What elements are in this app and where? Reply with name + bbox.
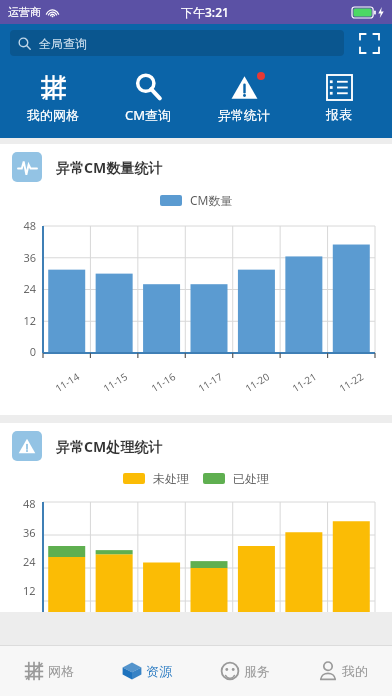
staticText: 未处理: [153, 471, 189, 486]
staticText: CM数量: [190, 192, 233, 208]
staticText: 异常CM数量统计: [56, 158, 163, 177]
staticText: 48: [23, 218, 36, 233]
button[interactable]: 资源: [98, 646, 196, 696]
staticText: 36: [23, 525, 36, 540]
staticText: 36: [23, 250, 36, 265]
staticText: CM查询: [125, 106, 172, 124]
staticText: 24: [23, 554, 36, 569]
button[interactable]: 异常统计: [202, 70, 286, 127]
staticText: 11-16: [148, 369, 179, 395]
button[interactable]: 全局查询: [10, 30, 344, 56]
button[interactable]: 我的网格: [11, 70, 95, 127]
staticText: 资源: [146, 663, 172, 679]
button[interactable]: 报表: [297, 71, 381, 126]
button[interactable]: 扫描: [356, 30, 382, 56]
staticText: 报表: [326, 106, 352, 122]
staticText: 11-15: [100, 369, 131, 395]
staticText: 11-17: [195, 369, 226, 395]
staticText: 48: [23, 496, 36, 511]
staticText: 11-22: [336, 369, 367, 395]
staticText: 服务: [244, 663, 270, 679]
staticText: 我的网格: [27, 107, 79, 123]
staticText: 11-21: [289, 369, 320, 395]
button[interactable]: CM查询: [106, 69, 190, 128]
staticText: 24: [23, 281, 36, 296]
staticText: 异常CM处理统计: [56, 437, 163, 456]
button[interactable]: 服务: [196, 646, 294, 696]
staticText: 全局查询: [39, 36, 87, 51]
staticText: 11-20: [242, 369, 273, 395]
staticText: 12: [23, 313, 36, 328]
button[interactable]: 网格: [0, 646, 98, 696]
staticText: 12: [23, 583, 36, 598]
button[interactable]: 我的: [294, 646, 392, 696]
staticText: 网格: [48, 663, 74, 679]
staticText: 异常统计: [218, 107, 270, 123]
staticText: 0: [29, 344, 36, 359]
staticText: 已处理: [233, 471, 269, 486]
staticText: 11-14: [52, 369, 83, 395]
staticText: 我的: [342, 663, 368, 679]
staticText: 下午3:21: [181, 4, 229, 20]
staticText: 运营商: [8, 5, 41, 19]
